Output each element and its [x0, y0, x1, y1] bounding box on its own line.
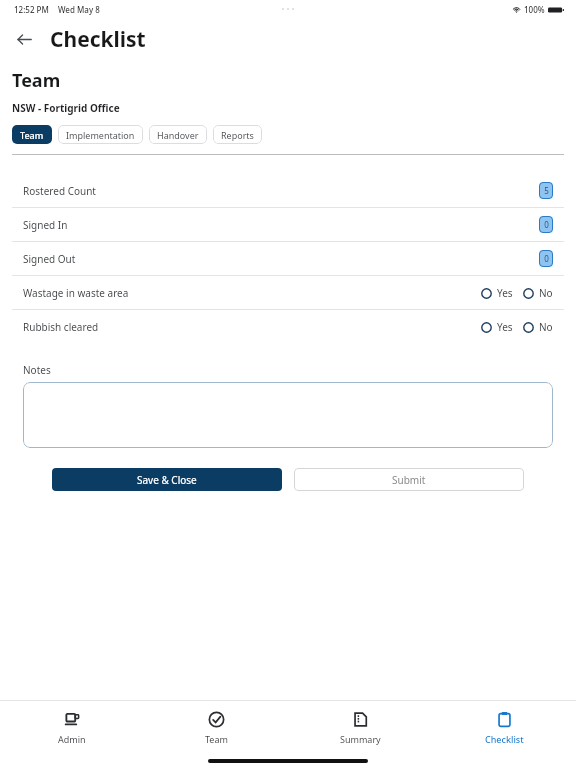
staticText: 0: [544, 219, 549, 230]
staticText: Checklist: [50, 25, 146, 54]
button[interactable]: Yes: [481, 320, 513, 334]
staticText: Checklist: [485, 733, 524, 745]
button[interactable]: Back: [10, 25, 38, 53]
staticText: Wastage in waste area: [23, 286, 129, 300]
button[interactable]: Rubbish cleared: [12, 310, 564, 343]
staticText: Rostered Count: [23, 184, 96, 198]
staticText: Team: [205, 733, 228, 745]
staticText: Implementation: [66, 129, 135, 141]
staticText: No: [539, 320, 553, 334]
button[interactable]: Rostered Count: [12, 174, 564, 207]
button[interactable]: Signed Out: [12, 242, 564, 275]
button[interactable]: No: [523, 320, 553, 334]
staticText: 0: [544, 253, 549, 264]
button[interactable]: Yes: [481, 286, 513, 300]
button[interactable]: Admin: [0, 707, 144, 749]
staticText: 100%: [524, 4, 545, 15]
staticText: Submit: [392, 473, 426, 487]
staticText: Yes: [497, 286, 513, 300]
button[interactable]: Signed In: [12, 208, 564, 241]
button[interactable]: Checklist: [432, 707, 576, 749]
button[interactable]: Handover: [149, 125, 207, 144]
button[interactable]: Team: [12, 125, 52, 144]
button[interactable]: [23, 382, 553, 448]
staticText: NSW - Fortigrid Office: [12, 101, 120, 115]
staticText: Team: [12, 68, 61, 93]
staticText: Handover: [157, 129, 199, 141]
staticText: Yes: [497, 320, 513, 334]
button[interactable]: Summary: [288, 707, 432, 749]
staticText: No: [539, 286, 553, 300]
staticText: 5: [544, 185, 549, 196]
staticText: Signed Out: [23, 252, 76, 266]
button[interactable]: Implementation: [58, 125, 143, 144]
staticText: Signed In: [23, 218, 68, 232]
button[interactable]: No: [523, 286, 553, 300]
staticText: Save & Close: [137, 473, 197, 487]
staticText: Notes: [23, 363, 51, 377]
staticText: Admin: [58, 733, 86, 745]
staticText: Rubbish cleared: [23, 320, 99, 334]
button[interactable]: Reports: [213, 125, 262, 144]
button[interactable]: Submit: [294, 468, 524, 491]
staticText: Summary: [340, 733, 381, 745]
button[interactable]: Wastage in waste area: [12, 276, 564, 309]
button[interactable]: Save & Close: [52, 468, 282, 491]
button[interactable]: Team: [144, 707, 288, 749]
staticText: Reports: [221, 129, 254, 141]
staticText: 12:52 PM: [14, 4, 49, 15]
staticText: Wed May 8: [58, 4, 100, 15]
staticText: Team: [20, 129, 44, 141]
